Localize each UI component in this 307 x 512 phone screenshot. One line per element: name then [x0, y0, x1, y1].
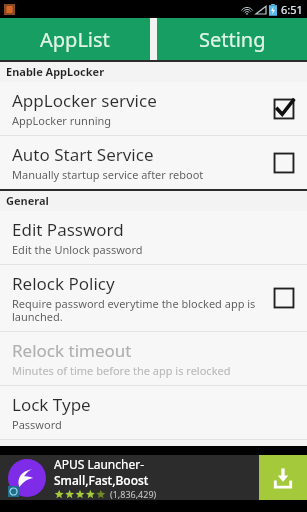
- button[interactable]: Lock Type: [0, 386, 307, 439]
- button[interactable]: Checked: [271, 96, 297, 122]
- staticText: (1,836,429): [110, 488, 157, 500]
- staticText: AppLocker service: [12, 89, 157, 112]
- staticText: AppList: [40, 26, 110, 53]
- staticText: Edit Password: [12, 218, 124, 241]
- staticText: AppLocker running: [12, 113, 112, 128]
- staticText: Manually startup service after reboot: [12, 167, 204, 182]
- button[interactable]: AppLocker service: [0, 82, 307, 135]
- button[interactable]: Auto Start Service: [0, 136, 307, 189]
- staticText: Lock Type: [12, 393, 91, 416]
- button[interactable]: Unchecked: [271, 285, 297, 311]
- staticText: Edit the Unlock password: [12, 242, 143, 257]
- staticText: Relock Policy: [12, 272, 115, 295]
- staticText: Enable AppLocker: [6, 64, 105, 79]
- staticText: Small,Fast,Boost: [54, 472, 149, 488]
- staticText: 6:51: [281, 2, 303, 17]
- staticText: Password: [12, 417, 62, 432]
- staticText: Relock timeout: [12, 339, 132, 362]
- staticText: APUS Launcher-: [54, 456, 145, 472]
- button[interactable]: Edit Password: [0, 211, 307, 264]
- button[interactable]: Relock Policy: [0, 265, 307, 331]
- button[interactable]: Relock timeout: [0, 332, 307, 385]
- staticText: Auto Start Service: [12, 143, 154, 166]
- staticText: Require password everytime the blocked a…: [12, 296, 256, 324]
- staticText: Setting: [199, 26, 266, 53]
- button[interactable]: Setting: [157, 18, 307, 60]
- staticText: General: [6, 193, 49, 208]
- button[interactable]: Unchecked: [271, 150, 297, 176]
- button[interactable]: Install: [259, 455, 307, 500]
- button[interactable]: APUS Launcher-: [0, 455, 307, 500]
- button[interactable]: AppList: [0, 18, 150, 60]
- staticText: Minutes of time before the app is relock…: [12, 363, 231, 378]
